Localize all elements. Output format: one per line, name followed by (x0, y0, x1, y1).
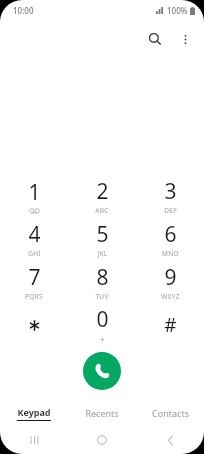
staticText: 100% (167, 5, 188, 16)
button[interactable]: Recent apps (0, 426, 68, 454)
staticText: MNO (162, 249, 179, 258)
button[interactable]: 0 (68, 303, 136, 346)
button[interactable]: 9 (136, 260, 204, 303)
button[interactable]: Contacts (136, 400, 204, 426)
button[interactable]: 3 (136, 174, 204, 217)
button[interactable]: # (136, 303, 204, 346)
staticText: 8 (96, 263, 109, 292)
staticText: 5 (96, 220, 109, 249)
staticText: PQRS (25, 292, 43, 301)
staticText: Contacts (152, 407, 189, 419)
button[interactable]: 4 (0, 217, 68, 260)
button[interactable]: Recents (68, 400, 136, 426)
staticText: ABC (95, 206, 109, 215)
staticText: 6 (164, 220, 177, 249)
staticText: DEF (164, 206, 177, 215)
button[interactable]: 5 (68, 217, 136, 260)
staticText: 3 (164, 177, 177, 206)
button[interactable] (0, 303, 68, 346)
staticText: JKL (97, 249, 108, 258)
staticText: Keypad (17, 406, 51, 418)
button[interactable]: Search (140, 24, 170, 54)
staticText: 10:00 (13, 5, 34, 16)
staticText: 1 (28, 178, 41, 207)
button[interactable]: Back (136, 426, 204, 454)
staticText: 2 (96, 177, 109, 206)
staticText: 4 (28, 220, 41, 249)
button[interactable]: 8 (68, 260, 136, 303)
staticText: TUV (95, 292, 109, 301)
staticText: 7 (28, 263, 41, 292)
staticText: Recents (85, 407, 119, 419)
button[interactable]: 2 (68, 174, 136, 217)
staticText: 0 (96, 305, 109, 334)
button[interactable]: More options (170, 24, 200, 54)
button[interactable]: 1 (0, 174, 68, 217)
staticText: 9 (164, 263, 177, 292)
button[interactable]: Call (83, 352, 121, 390)
staticText: + (100, 334, 105, 345)
button[interactable]: 7 (0, 260, 68, 303)
button[interactable]: 6 (136, 217, 204, 260)
staticText: GHI (28, 249, 41, 258)
button[interactable]: Home (68, 426, 136, 454)
staticText: WXYZ (161, 292, 180, 301)
staticText: # (164, 312, 177, 338)
button[interactable]: Keypad (0, 400, 68, 426)
